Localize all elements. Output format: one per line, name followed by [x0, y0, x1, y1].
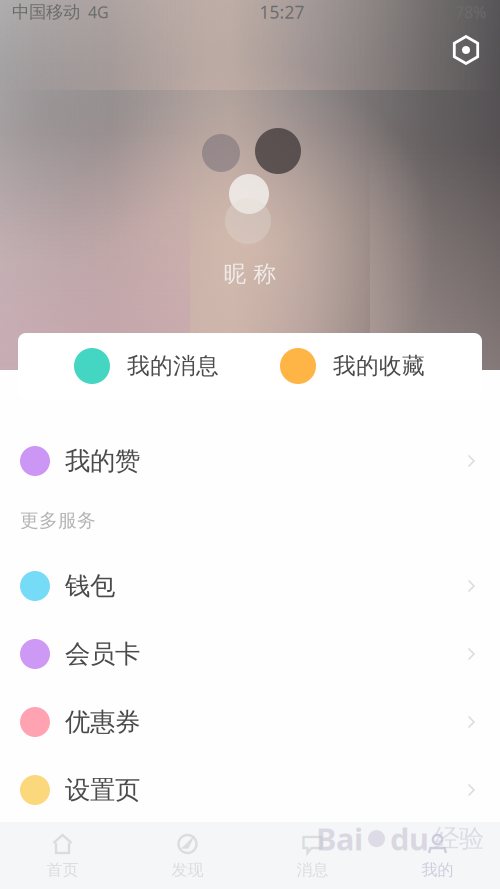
staticText: 更多服务: [20, 509, 96, 532]
staticText: 经验: [434, 823, 484, 854]
staticText: Bai: [316, 818, 363, 859]
staticText: 我的赞: [65, 445, 140, 476]
staticText: 首页: [46, 860, 78, 880]
staticText: 15:27: [259, 0, 304, 23]
staticText: 中国移动: [12, 1, 80, 23]
staticText: 发现: [171, 860, 203, 880]
button[interactable]: 我的: [375, 822, 500, 889]
button[interactable]: 我的消息: [74, 333, 262, 399]
staticText: 我的消息: [127, 352, 219, 380]
staticText: 我的收藏: [333, 352, 425, 380]
button[interactable]: 我的收藏: [280, 333, 468, 399]
button[interactable]: 会员卡: [0, 620, 500, 688]
button[interactable]: 设置页: [0, 756, 500, 824]
button[interactable]: 消息: [250, 822, 375, 889]
staticText: 设置页: [65, 774, 140, 805]
staticText: 优惠券: [65, 706, 140, 737]
staticText: 钱包: [65, 570, 115, 601]
staticText: 78%: [455, 1, 486, 23]
button[interactable]: 首页: [0, 822, 125, 889]
button[interactable]: 钱包: [0, 552, 500, 620]
button[interactable]: Settings: [441, 25, 491, 75]
staticText: 会员卡: [65, 638, 140, 669]
staticText: 4G: [88, 1, 109, 23]
staticText: 昵 称: [223, 260, 276, 288]
button[interactable]: 我的赞: [0, 427, 500, 495]
staticText: 消息: [296, 860, 328, 880]
button[interactable]: 优惠券: [0, 688, 500, 756]
staticText: du: [390, 818, 429, 859]
staticText: 我的: [421, 860, 453, 880]
button[interactable]: 发现: [125, 822, 250, 889]
